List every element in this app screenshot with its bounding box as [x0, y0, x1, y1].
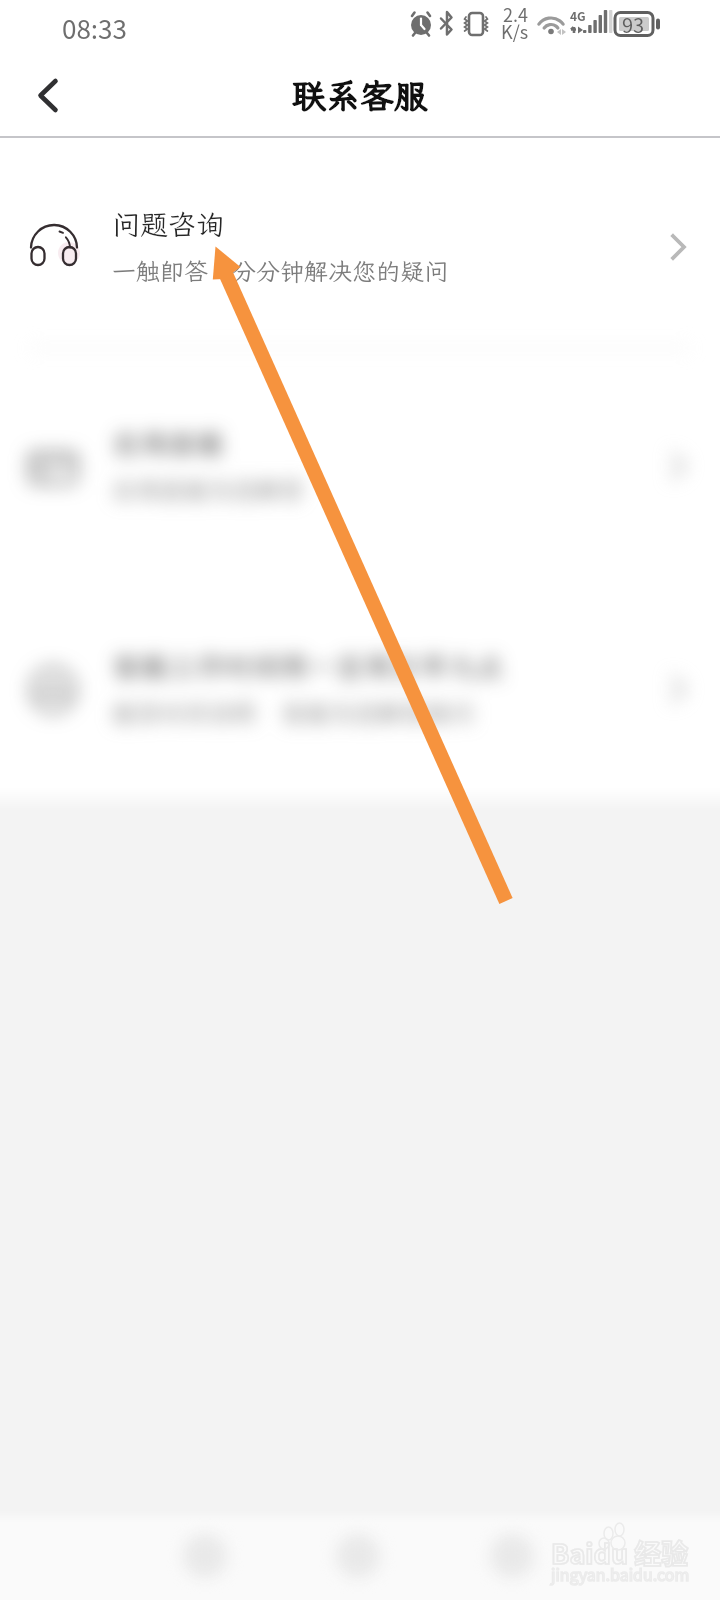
- button[interactable]: Profile: [464, 1512, 560, 1600]
- staticText: 一触即答，分分钟解决您的疑问: [112, 255, 448, 287]
- staticText: 在线客服为您解答: [112, 474, 304, 506]
- button[interactable]: Discover: [310, 1512, 406, 1600]
- button[interactable]: 客服工作时间周一至周日早九点: [0, 628, 720, 748]
- button[interactable]: Back: [0, 55, 84, 138]
- button[interactable]: Home: [157, 1512, 253, 1600]
- staticText: 在线客服: [112, 425, 225, 462]
- button[interactable]: 在线客服: [0, 405, 720, 525]
- staticText: K/s: [501, 18, 529, 44]
- staticText: 08:33: [62, 9, 127, 47]
- staticText: Baidu 经验: [551, 1533, 689, 1572]
- staticText: 客服工作时间周一至周日早九点: [112, 648, 505, 685]
- staticText: 4G: [570, 7, 586, 24]
- button[interactable]: 问题咨询: [0, 186, 720, 306]
- staticText: 联系客服: [292, 73, 428, 118]
- staticText: 问题咨询: [112, 206, 225, 243]
- staticText: 93: [622, 10, 645, 39]
- staticText: jingyan.baidu.com: [551, 1562, 690, 1585]
- staticText: 2.4: [503, 1, 528, 27]
- staticText: 服务时间说明 客服为您解答疑问: [112, 697, 474, 729]
